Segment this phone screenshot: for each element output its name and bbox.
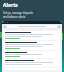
button[interactable]: Toggle alert xyxy=(4,51,60,58)
button[interactable]: Address bar xyxy=(7,25,57,28)
button[interactable]: Toggle alert xyxy=(4,41,60,50)
button[interactable]: Toggle alert xyxy=(4,59,60,67)
button[interactable]: Toggle alert xyxy=(4,31,60,40)
staticText: Set up, manage deposits and balance aler… xyxy=(3,11,34,18)
staticText: Alerts xyxy=(3,2,18,9)
